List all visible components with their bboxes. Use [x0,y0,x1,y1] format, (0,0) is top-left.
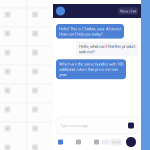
staticText: Which are the same bundles with 100 [59,61,123,66]
button[interactable]: Send message [126,137,136,147]
button[interactable]: Voice input [128,122,134,128]
staticText: How can I help you today? [59,31,103,37]
button[interactable]: Send [109,138,123,146]
staticText: Type a message [60,123,88,128]
staticText: additional colors that price increas [59,67,118,72]
staticText: Send [112,139,120,145]
staticText: Hello! This is Chatbot, your AI assist [59,26,121,31]
button[interactable]: New chat [118,7,138,15]
staticText: Hello, what can I find this product [79,44,135,49]
staticText: with me? [79,49,95,54]
staticText: New chat [120,8,136,14]
staticText: year. [59,72,67,77]
